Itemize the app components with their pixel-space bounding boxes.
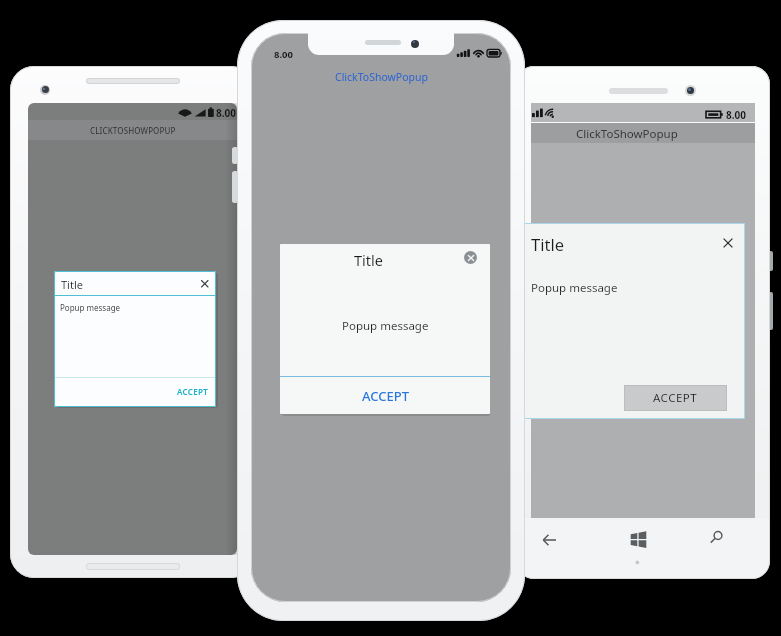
button[interactable] — [197, 276, 213, 292]
staticText: ClickToShowPopup — [335, 70, 428, 84]
button[interactable]: ACCEPT — [170, 381, 214, 401]
button[interactable]: ACCEPT — [624, 385, 727, 411]
button[interactable] — [625, 530, 651, 556]
staticText: Popup message — [531, 280, 618, 295]
staticText: CLICKTOSHOWPOPUP — [90, 125, 176, 136]
staticText: Title — [354, 250, 383, 266]
button[interactable] — [705, 530, 731, 556]
staticText: Title — [531, 233, 564, 253]
staticText: ClickToShowPopup — [576, 126, 678, 142]
staticText: Title — [61, 277, 83, 290]
staticText: Popup message — [342, 318, 429, 334]
button[interactable] — [719, 234, 737, 252]
button[interactable]: ACCEPT — [330, 383, 440, 409]
staticText: ACCEPT — [362, 387, 409, 405]
staticText: 8.00 — [274, 48, 293, 61]
button[interactable] — [536, 530, 562, 556]
staticText: 8.00 — [216, 106, 236, 119]
staticText: ACCEPT — [653, 390, 698, 406]
button[interactable] — [461, 248, 480, 267]
staticText: ACCEPT — [177, 386, 208, 397]
staticText: Popup message — [60, 302, 121, 313]
staticText: 8.00 — [726, 108, 746, 122]
